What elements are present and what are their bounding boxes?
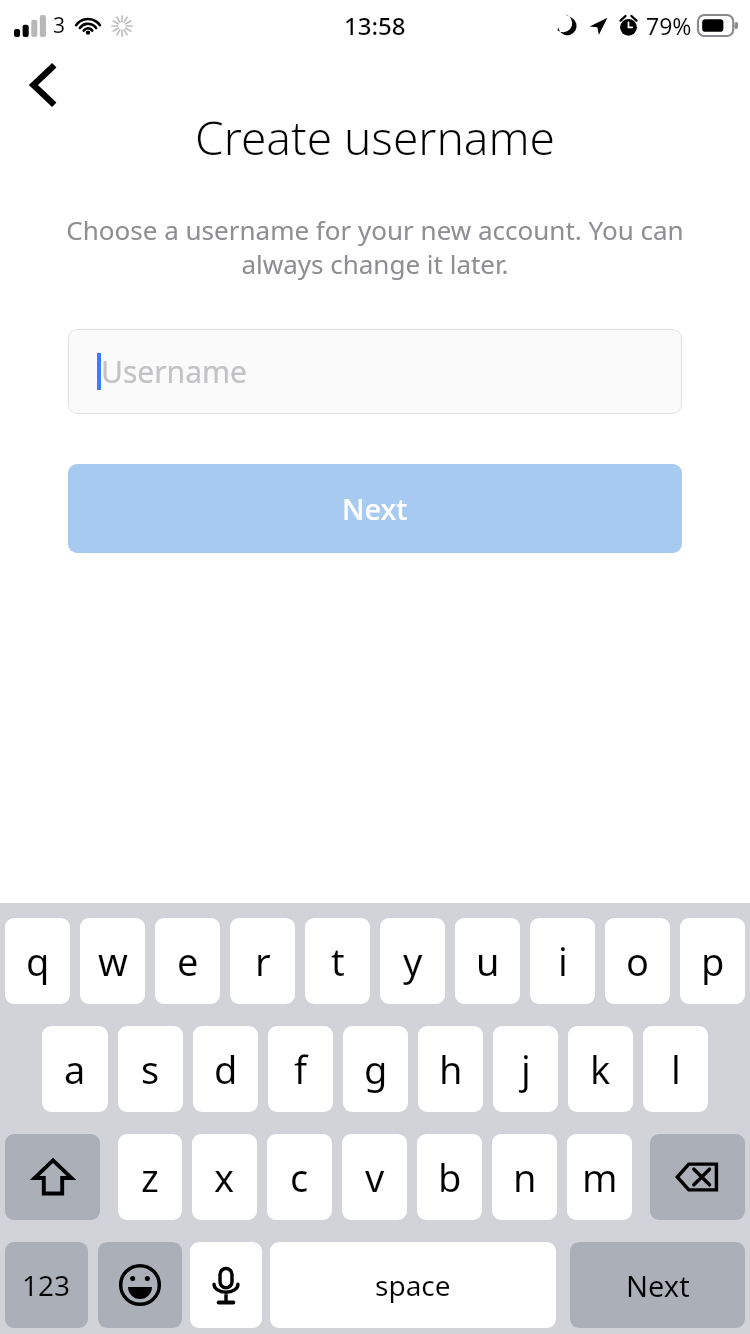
button[interactable]: h: [418, 1026, 483, 1112]
staticText: Create username: [0, 106, 750, 169]
button[interactable]: Emoji: [98, 1242, 182, 1328]
button[interactable]: t: [305, 918, 370, 1004]
button[interactable]: Back: [10, 52, 76, 118]
button[interactable]: Next: [570, 1242, 745, 1328]
button[interactable]: l: [643, 1026, 708, 1112]
staticText: e: [177, 935, 199, 987]
staticText: h: [439, 1043, 463, 1095]
button[interactable]: m: [567, 1134, 632, 1220]
staticText: 123: [22, 1266, 71, 1304]
staticText: 3: [53, 11, 66, 40]
button[interactable]: n: [492, 1134, 557, 1220]
staticText: i: [558, 935, 568, 987]
staticText: d: [214, 1043, 238, 1095]
button[interactable]: j: [493, 1026, 558, 1112]
staticText: Next: [626, 1266, 690, 1305]
staticText: b: [438, 1151, 462, 1203]
staticText: Username: [101, 351, 247, 392]
button[interactable]: u: [455, 918, 520, 1004]
staticText: v: [365, 1151, 385, 1203]
button[interactable]: v: [342, 1134, 407, 1220]
button[interactable]: x: [192, 1134, 257, 1220]
button[interactable]: a: [42, 1026, 108, 1112]
staticText: 79%: [646, 10, 692, 41]
button[interactable]: Shift: [5, 1134, 100, 1220]
button[interactable]: q: [5, 918, 70, 1004]
button[interactable]: k: [568, 1026, 633, 1112]
staticText: Choose a username for your new account. …: [38, 212, 712, 281]
button[interactable]: w: [80, 918, 145, 1004]
staticText: l: [671, 1043, 681, 1095]
staticText: x: [214, 1151, 235, 1203]
staticText: c: [290, 1151, 309, 1203]
staticText: o: [626, 935, 649, 987]
staticText: space: [375, 1266, 451, 1304]
staticText: s: [141, 1043, 160, 1095]
button[interactable]: f: [268, 1026, 333, 1112]
staticText: j: [521, 1043, 531, 1095]
button[interactable]: y: [380, 918, 445, 1004]
button[interactable]: g: [343, 1026, 408, 1112]
staticText: p: [701, 935, 725, 987]
staticText: 13:58: [344, 9, 406, 42]
staticText: m: [582, 1151, 618, 1203]
button[interactable]: space: [270, 1242, 556, 1328]
button[interactable]: 123: [5, 1242, 88, 1328]
staticText: z: [141, 1151, 159, 1203]
staticText: u: [476, 935, 500, 987]
staticText: t: [331, 935, 345, 987]
button[interactable]: Backspace: [650, 1134, 745, 1220]
button[interactable]: Voice input: [190, 1242, 262, 1328]
button[interactable]: z: [118, 1134, 182, 1220]
staticText: q: [26, 935, 50, 987]
staticText: w: [98, 935, 128, 987]
button[interactable]: s: [118, 1026, 183, 1112]
button[interactable]: b: [417, 1134, 482, 1220]
staticText: y: [403, 935, 423, 987]
staticText: Next: [342, 489, 408, 528]
staticText: f: [294, 1043, 308, 1095]
button[interactable]: r: [230, 918, 295, 1004]
staticText: g: [364, 1043, 388, 1095]
button[interactable]: Next: [68, 464, 682, 553]
staticText: k: [590, 1043, 611, 1095]
button[interactable]: d: [193, 1026, 258, 1112]
button[interactable]: e: [155, 918, 220, 1004]
button[interactable]: Username: [68, 329, 682, 414]
button[interactable]: i: [530, 918, 595, 1004]
staticText: r: [255, 935, 271, 987]
staticText: n: [513, 1151, 537, 1203]
button[interactable]: p: [680, 918, 745, 1004]
button[interactable]: c: [267, 1134, 332, 1220]
staticText: a: [64, 1043, 86, 1095]
button[interactable]: o: [605, 918, 670, 1004]
